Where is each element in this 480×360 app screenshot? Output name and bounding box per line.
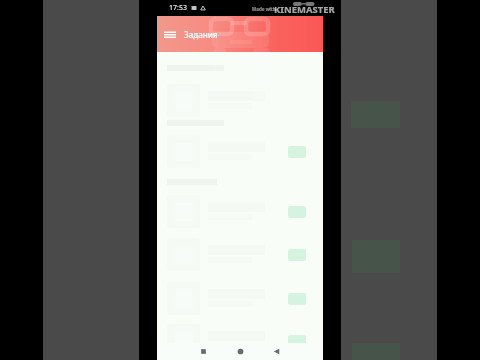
button[interactable]: Recents [197,345,210,358]
button[interactable] [157,320,323,360]
button[interactable]: Back [270,345,283,358]
button[interactable] [157,278,323,320]
staticText: 17:53 [169,3,187,13]
staticText: Задания [184,29,218,40]
staticText: KINEMASTER [274,3,335,16]
button[interactable] [157,191,323,233]
button[interactable]: Menu [163,27,177,41]
staticText: Made with [252,6,276,12]
button[interactable]: Home [234,345,247,358]
button[interactable] [157,234,323,276]
button[interactable] [157,131,323,173]
